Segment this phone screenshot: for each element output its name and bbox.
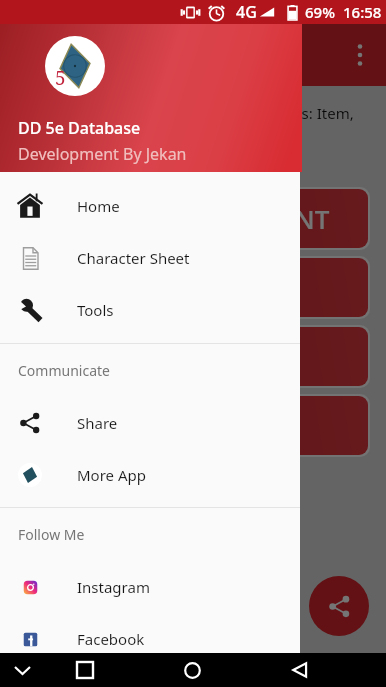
button[interactable]: Character Sheet [0, 232, 300, 284]
staticText: Share [77, 413, 118, 433]
staticText: Facebook [77, 629, 145, 649]
button[interactable]: More options [343, 38, 377, 72]
button[interactable]: Facebook [0, 613, 300, 665]
button[interactable]: More App [0, 449, 300, 501]
button[interactable]: Tools [0, 284, 300, 336]
staticText: Home [77, 196, 120, 216]
staticText: Categories: Item, [233, 103, 354, 123]
button[interactable]: SPELLS [18, 327, 368, 386]
button[interactable]: Hide keyboard [5, 653, 40, 687]
button[interactable]: Recents [67, 653, 102, 687]
staticText: More App [77, 465, 146, 485]
button[interactable]: MONSTERS [18, 258, 368, 317]
staticText: 4G [236, 1, 257, 23]
button[interactable]: Share [309, 576, 369, 636]
staticText: 69% [305, 2, 335, 22]
staticText: Character Sheet [77, 248, 190, 268]
staticText: 5 [55, 65, 66, 91]
staticText: Tools [77, 300, 114, 320]
button[interactable]: Back [282, 653, 317, 687]
button[interactable]: CLASSES [18, 396, 368, 455]
staticText: DD 5e Database [18, 117, 141, 139]
staticText: EQUIPMENT [177, 201, 330, 236]
button[interactable]: Instagram [0, 561, 300, 613]
button[interactable]: Home [0, 180, 300, 232]
button[interactable]: EQUIPMENT [18, 189, 368, 248]
staticText: Development By Jekan [18, 143, 187, 165]
staticText: Follow Me [18, 525, 85, 544]
button[interactable]: Share [0, 397, 300, 449]
staticText: 16:58 [343, 2, 382, 22]
staticText: SPELLS [186, 339, 273, 374]
button[interactable]: Home [175, 653, 210, 687]
staticText: Instagram [77, 577, 150, 597]
staticText: Communicate [18, 361, 110, 380]
